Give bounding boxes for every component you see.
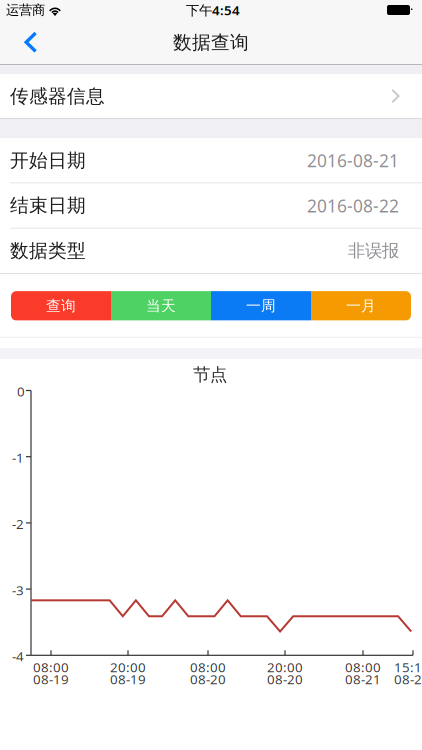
staticText: 08:00 bbox=[33, 658, 69, 676]
staticText: 数据查询 bbox=[173, 31, 249, 54]
button[interactable]: 开始日期 bbox=[0, 138, 422, 183]
staticText: 数据类型 bbox=[10, 239, 86, 262]
staticText: 20:00 bbox=[110, 658, 146, 676]
staticText: 当天 bbox=[146, 297, 176, 315]
staticText: 传感器信息 bbox=[10, 85, 105, 108]
staticText: 08-20 bbox=[267, 670, 303, 688]
button[interactable]: 一月 bbox=[311, 291, 411, 321]
staticText: 20:00 bbox=[267, 658, 303, 676]
staticText: 一周 bbox=[246, 297, 276, 315]
staticText: 0 bbox=[17, 382, 25, 400]
staticText: 2016-08-22 bbox=[307, 194, 399, 217]
staticText: 08-19 bbox=[33, 670, 69, 688]
staticText: 非误报 bbox=[348, 240, 399, 261]
staticText: -1 bbox=[12, 449, 24, 466]
staticText: 08-19 bbox=[110, 670, 146, 688]
staticText: -3 bbox=[12, 581, 24, 599]
staticText: 运营商 bbox=[6, 2, 45, 18]
staticText: 08:00 bbox=[345, 658, 381, 676]
button[interactable]: 查询 bbox=[11, 291, 111, 321]
staticText: -4 bbox=[12, 647, 24, 665]
staticText: 08-20 bbox=[190, 670, 226, 688]
staticText: 节点 bbox=[193, 364, 227, 385]
staticText: 查询 bbox=[46, 297, 76, 315]
staticText: 开始日期 bbox=[10, 149, 86, 172]
staticText: 一月 bbox=[346, 297, 376, 315]
staticText: 08-2 bbox=[394, 670, 422, 688]
button[interactable]: 结束日期 bbox=[0, 183, 422, 228]
button[interactable]: 一周 bbox=[211, 291, 311, 321]
staticText: 结束日期 bbox=[10, 194, 86, 217]
staticText: 15:14 bbox=[394, 658, 422, 676]
button[interactable]: 当天 bbox=[111, 291, 211, 321]
staticText: 08:00 bbox=[190, 658, 226, 676]
button[interactable]: 数据类型 bbox=[0, 229, 422, 273]
staticText: 08-21 bbox=[345, 670, 381, 688]
staticText: 2016-08-21 bbox=[307, 149, 399, 172]
staticText: -2 bbox=[12, 515, 24, 533]
staticText: 下午4:54 bbox=[186, 1, 240, 19]
button[interactable]: Back bbox=[0, 20, 60, 65]
button[interactable]: 传感器信息 bbox=[0, 74, 422, 118]
